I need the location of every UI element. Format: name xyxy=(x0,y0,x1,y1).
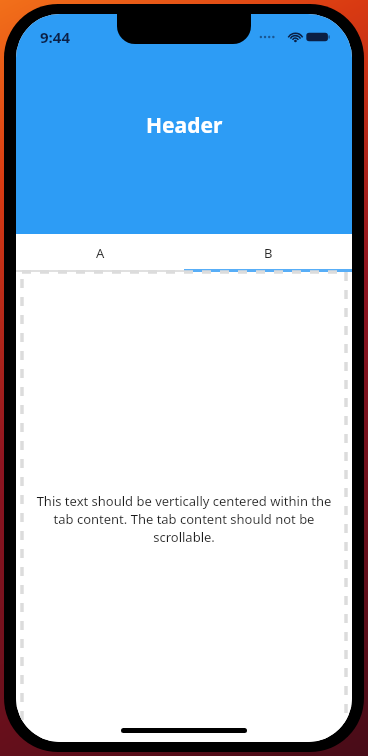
staticText: A xyxy=(96,244,105,262)
staticText: Header xyxy=(146,111,223,140)
other: Signal, Wi-Fi and battery status xyxy=(258,29,330,45)
staticText: This text should be vertically centered … xyxy=(34,492,334,546)
button[interactable]: B xyxy=(184,234,352,272)
button[interactable]: A xyxy=(16,234,184,272)
staticText: 9:44 xyxy=(40,27,70,47)
staticText: B xyxy=(264,244,273,262)
